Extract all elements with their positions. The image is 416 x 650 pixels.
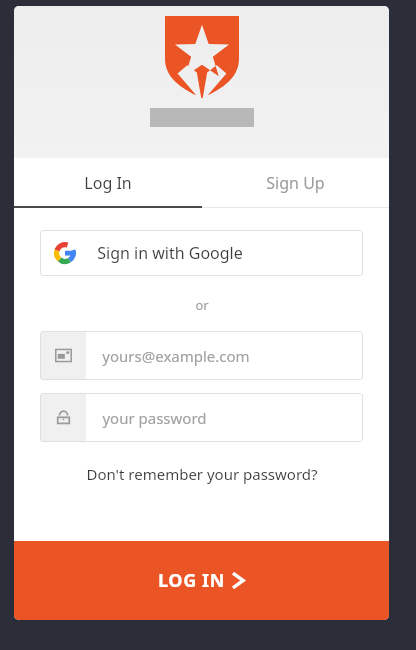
staticText: yours@example.com: [102, 346, 250, 366]
button[interactable]: Email: [40, 331, 363, 380]
staticText: Sign in with Google: [97, 242, 243, 264]
button[interactable]: Password: [40, 393, 363, 442]
button[interactable]: Sign in with Google: [40, 230, 363, 276]
button[interactable]: Log In: [14, 158, 201, 208]
other: Email: [40, 331, 86, 380]
staticText: Sign Up: [266, 172, 325, 194]
other: Password: [40, 393, 86, 442]
staticText: LOG IN: [158, 568, 225, 593]
staticText: or: [195, 296, 209, 314]
staticText: your password: [102, 408, 207, 428]
button[interactable]: LOG IN: [14, 541, 389, 620]
button[interactable]: Don't remember your password?: [40, 464, 363, 484]
staticText: Log In: [84, 172, 132, 194]
staticText: Don't remember your password?: [86, 464, 318, 484]
button[interactable]: Sign Up: [201, 158, 389, 208]
